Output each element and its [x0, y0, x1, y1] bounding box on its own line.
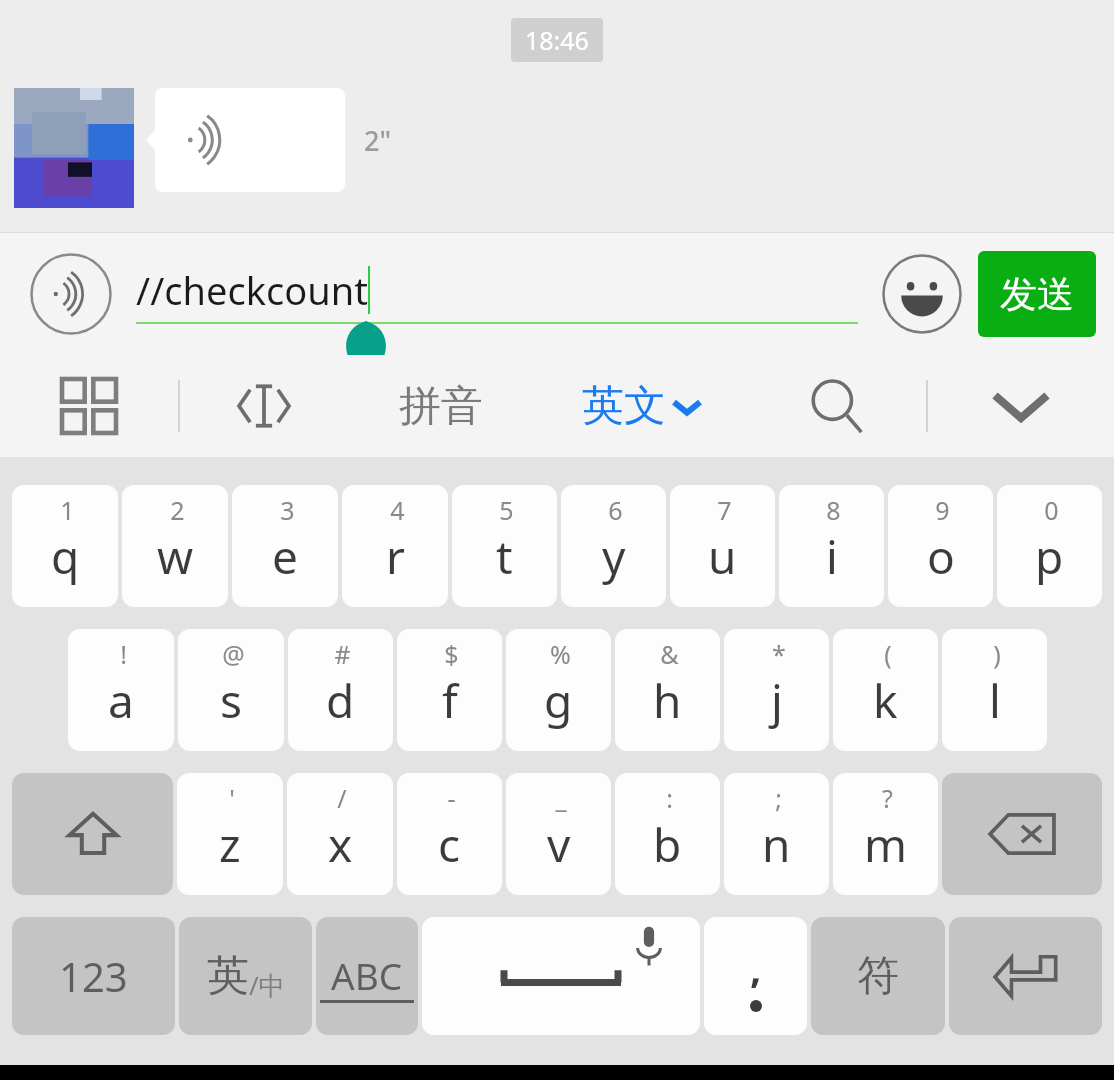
staticText: 英	[207, 950, 249, 1003]
staticText: q	[51, 525, 80, 588]
button[interactable]: )	[942, 629, 1047, 751]
button[interactable]: Punctuation	[704, 917, 807, 1035]
button[interactable]: Move cursor	[180, 355, 348, 457]
button[interactable]: Space	[422, 917, 700, 1035]
button[interactable]: Voice input	[30, 253, 112, 335]
button[interactable]: Emoji	[882, 254, 962, 334]
staticText: 1	[60, 493, 75, 527]
button[interactable]: Keyboard layouts	[0, 355, 178, 457]
button[interactable]: 英	[179, 917, 312, 1035]
staticText: _	[555, 781, 567, 815]
staticText: e	[272, 525, 298, 588]
staticText: d	[326, 669, 355, 732]
button[interactable]: 1	[12, 485, 118, 607]
staticText: #	[334, 637, 351, 671]
staticText: ABC	[331, 950, 403, 1000]
staticText: g	[544, 669, 573, 732]
button[interactable]: (	[833, 629, 938, 751]
button[interactable]: Search	[748, 355, 926, 457]
button[interactable]: &	[615, 629, 720, 751]
staticText: 2"	[364, 122, 392, 159]
button[interactable]: ABC	[316, 917, 418, 1035]
staticText: ;	[775, 781, 782, 815]
staticText: o	[927, 525, 955, 588]
button[interactable]: 123	[12, 917, 175, 1035]
staticText: //checkcount	[136, 264, 368, 316]
staticText: %	[550, 637, 571, 671]
button[interactable]: %	[506, 629, 611, 751]
staticText: a	[108, 669, 134, 732]
button[interactable]: !	[68, 629, 174, 751]
button[interactable]: Shift	[12, 773, 173, 895]
button[interactable]: :	[615, 773, 720, 895]
button[interactable]: -	[397, 773, 502, 895]
staticText: b	[653, 813, 682, 876]
staticText: 8	[826, 493, 841, 527]
staticText: 发送	[1000, 271, 1074, 318]
button[interactable]: Enter	[949, 917, 1102, 1035]
staticText: '	[229, 781, 235, 815]
staticText: p	[1035, 525, 1064, 588]
button[interactable]: 5	[452, 485, 557, 607]
button[interactable]: 3	[232, 485, 338, 607]
staticText: 拼音	[399, 380, 483, 433]
staticText: n	[762, 813, 791, 876]
staticText: t	[496, 525, 513, 588]
button[interactable]: ;	[724, 773, 829, 895]
button[interactable]: 9	[888, 485, 993, 607]
staticText: 5	[499, 493, 514, 527]
staticText: h	[653, 669, 682, 732]
staticText: w	[157, 525, 194, 588]
button[interactable]: #	[288, 629, 393, 751]
staticText: v	[547, 813, 571, 876]
button[interactable]: 6	[561, 485, 666, 607]
button[interactable]: 拼音	[348, 355, 533, 457]
button[interactable]: /	[287, 773, 393, 895]
button[interactable]: $	[397, 629, 502, 751]
button[interactable]: 符	[811, 917, 945, 1035]
staticText: 0	[1044, 493, 1059, 527]
button[interactable]: ?	[833, 773, 938, 895]
button[interactable]: 2	[122, 485, 228, 607]
staticText: @	[222, 637, 245, 671]
button[interactable]: *	[724, 629, 829, 751]
staticText: !	[120, 637, 127, 671]
button[interactable]: Backspace	[942, 773, 1102, 895]
staticText: 英文	[582, 380, 666, 433]
staticText: y	[602, 525, 626, 588]
button[interactable]: 4	[342, 485, 448, 607]
staticText: )	[993, 637, 1001, 671]
staticText: l	[989, 669, 1001, 732]
staticText: i	[826, 525, 838, 588]
staticText: 3	[280, 493, 295, 527]
staticText: ?	[882, 781, 893, 815]
staticText: c	[438, 813, 461, 876]
button[interactable]: Voice message 2 seconds	[155, 88, 345, 192]
staticText: 6	[608, 493, 623, 527]
staticText: 2	[170, 493, 185, 527]
button[interactable]: _	[506, 773, 611, 895]
button[interactable]: 发送	[978, 251, 1096, 337]
staticText: 18:46	[525, 23, 589, 57]
staticText: f	[442, 669, 458, 732]
staticText: u	[708, 525, 737, 588]
button[interactable]: @	[178, 629, 284, 751]
staticText: ,	[750, 940, 762, 994]
staticText: s	[220, 669, 243, 732]
button[interactable]: 英文	[533, 355, 748, 457]
button[interactable]: Hide keyboard	[928, 355, 1114, 457]
staticText: -	[447, 781, 456, 815]
staticText: x	[328, 813, 353, 876]
staticText: &	[660, 637, 679, 671]
staticText: 9	[935, 493, 950, 527]
button[interactable]: 7	[670, 485, 775, 607]
staticText: z	[219, 813, 241, 876]
button[interactable]: 0	[997, 485, 1102, 607]
staticText: 7	[717, 493, 732, 527]
staticText: :	[666, 781, 673, 815]
button[interactable]: 8	[779, 485, 884, 607]
button[interactable]: '	[177, 773, 283, 895]
staticText: 123	[59, 949, 128, 1003]
staticText: m	[864, 813, 908, 876]
staticText: $	[444, 637, 459, 671]
